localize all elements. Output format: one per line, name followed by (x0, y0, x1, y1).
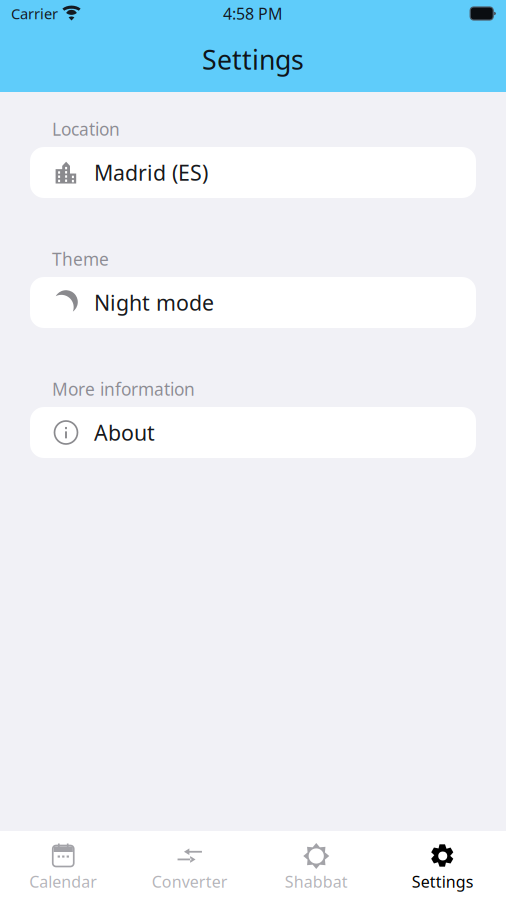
button[interactable]: About (30, 407, 476, 458)
staticText: Madrid (ES) (94, 158, 208, 187)
staticText: Night mode (94, 288, 214, 317)
staticText: Theme (52, 247, 109, 270)
staticText: More information (52, 377, 195, 400)
button[interactable]: Settings (379, 831, 506, 900)
button[interactable]: Madrid (ES) (30, 147, 476, 198)
staticText: Settings (412, 871, 474, 892)
button[interactable]: Converter (126, 831, 253, 900)
staticText: Carrier (11, 4, 58, 23)
button[interactable]: Calendar (0, 831, 126, 900)
button[interactable]: Night mode (30, 277, 476, 328)
staticText: Shabbat (285, 871, 348, 892)
staticText: 4:58 PM (223, 3, 283, 24)
staticText: About (94, 418, 155, 447)
staticText: Settings (202, 42, 304, 77)
staticText: Calendar (29, 871, 97, 892)
staticText: Location (52, 117, 120, 140)
button[interactable]: Shabbat (253, 831, 379, 900)
staticText: Converter (152, 871, 228, 892)
